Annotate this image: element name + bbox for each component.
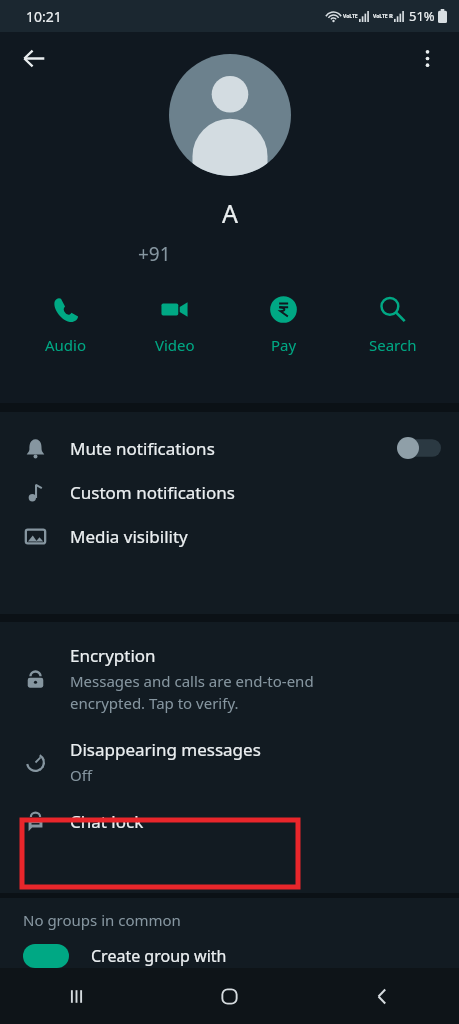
staticText: 10:21 [26, 7, 62, 26]
staticText: Search [369, 335, 417, 355]
staticText: Custom notifications [70, 481, 235, 504]
staticText: Create group with [91, 945, 227, 967]
button[interactable]: Pay [229, 292, 338, 358]
staticText: Encryption [70, 644, 156, 667]
staticText: 51% [409, 7, 435, 25]
button[interactable]: Home [153, 968, 306, 1024]
button[interactable]: Back [306, 968, 459, 1024]
staticText: Mute notifications [70, 437, 215, 460]
staticText: Messages and calls are end-to-end encryp… [70, 671, 314, 714]
button[interactable]: Recent apps [0, 968, 153, 1024]
staticText: Audio [45, 335, 87, 355]
staticText: Off [70, 765, 93, 785]
staticText: Disappearing messages [70, 738, 261, 761]
button[interactable]: Disappearing messages [0, 728, 459, 795]
button[interactable]: Media visibility [0, 514, 459, 558]
staticText: +91 [138, 241, 171, 267]
button[interactable]: Video [120, 292, 229, 358]
button[interactable]: More options [405, 36, 449, 80]
staticText: Video [155, 335, 195, 355]
button[interactable]: Audio [12, 292, 120, 358]
button[interactable]: Chat lock [0, 799, 459, 843]
button[interactable]: Encryption [0, 634, 459, 724]
button[interactable]: Custom notifications [0, 470, 459, 514]
button[interactable]: Create group with [0, 944, 459, 968]
staticText: No groups in common [23, 910, 181, 930]
button[interactable]: Search [338, 292, 447, 358]
staticText: R [389, 12, 393, 20]
button[interactable]: Mute notifications [0, 426, 459, 470]
staticText: Chat lock [70, 810, 144, 833]
staticText: VoLTE [343, 13, 358, 20]
button[interactable]: Mute notifications [397, 437, 441, 459]
staticText: Pay [271, 335, 297, 355]
staticText: A [222, 196, 238, 230]
button[interactable]: Back [10, 35, 56, 81]
staticText: VoLTE [373, 13, 388, 20]
staticText: Media visibility [70, 525, 188, 548]
